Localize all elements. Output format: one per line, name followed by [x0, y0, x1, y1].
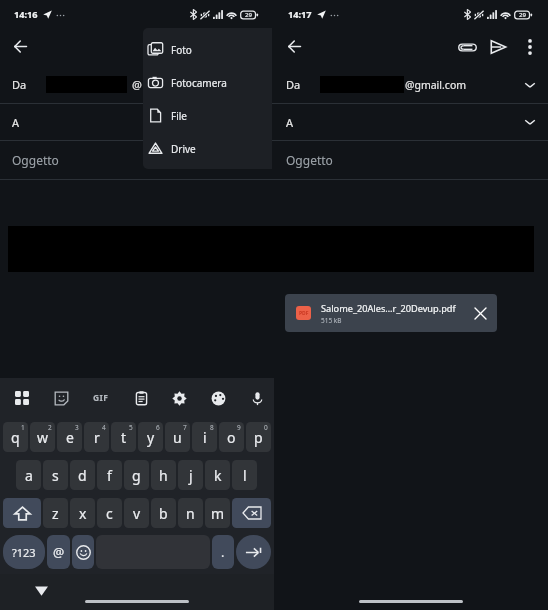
staticText: Oggetto: [286, 152, 333, 168]
staticText: c: [106, 504, 113, 523]
staticText: g: [132, 466, 141, 485]
button[interactable]: b: [151, 498, 176, 528]
staticText: 29: [245, 11, 252, 19]
button[interactable]: Clipboard: [130, 387, 152, 409]
button[interactable]: s: [43, 460, 68, 490]
staticText: Drive: [171, 142, 196, 156]
button[interactable]: o: [219, 422, 244, 452]
button[interactable]: File: [143, 99, 272, 132]
staticText: l: [243, 466, 247, 485]
button[interactable]: Enter: [236, 535, 271, 569]
button[interactable]: .: [212, 535, 234, 569]
staticText: h: [159, 466, 168, 485]
button[interactable]: Settings: [168, 387, 190, 409]
button[interactable]: m: [205, 498, 230, 528]
button[interactable]: r: [84, 422, 109, 452]
other: Shift: [14, 505, 31, 522]
button[interactable]: i: [192, 422, 217, 452]
button[interactable]: f: [97, 460, 122, 490]
button[interactable]: Voice input: [246, 387, 268, 409]
button[interactable]: c: [97, 498, 122, 528]
button[interactable]: Shift: [3, 498, 41, 528]
staticText: @: [132, 77, 142, 92]
button[interactable]: y: [138, 422, 163, 452]
button[interactable]: Attach file: [453, 33, 481, 61]
button[interactable]: a: [16, 460, 41, 490]
staticText: o: [227, 428, 236, 447]
staticText: GIF: [93, 392, 109, 404]
staticText: PDF: [299, 310, 309, 317]
staticText: z: [52, 504, 59, 523]
staticText: 8: [210, 423, 214, 432]
button[interactable]: d: [70, 460, 95, 490]
button[interactable]: Hide keyboard: [35, 586, 48, 596]
button[interactable]: Back: [280, 32, 308, 60]
button[interactable]: Apps: [11, 387, 33, 409]
button[interactable]: q: [3, 422, 28, 452]
other: Backspace: [242, 503, 262, 523]
button[interactable]: p: [246, 422, 271, 452]
staticText: i: [203, 428, 207, 447]
staticText: 4: [102, 423, 106, 432]
staticText: 515 kB: [321, 316, 342, 325]
button[interactable]: n: [178, 498, 203, 528]
staticText: m: [211, 504, 225, 523]
button[interactable]: Emoji: [72, 535, 94, 569]
staticText: File: [171, 109, 187, 123]
staticText: A: [286, 115, 294, 130]
button[interactable]: w: [30, 422, 55, 452]
button[interactable]: Foto: [143, 33, 272, 66]
staticText: 2: [48, 423, 52, 432]
staticText: ?123: [12, 545, 36, 560]
staticText: s: [52, 466, 59, 485]
staticText: .: [221, 544, 225, 561]
button[interactable]: v: [124, 498, 149, 528]
button[interactable]: x: [70, 498, 95, 528]
button[interactable]: h: [151, 460, 176, 490]
button[interactable]: Remove attachment: [469, 302, 491, 324]
button[interactable]: z: [43, 498, 68, 528]
button[interactable]: Backspace: [232, 498, 271, 528]
staticText: Da: [286, 77, 301, 92]
button[interactable]: e: [57, 422, 82, 452]
button[interactable]: l: [232, 460, 257, 490]
staticText: u: [173, 428, 182, 447]
button[interactable]: Theme: [207, 387, 229, 409]
staticText: q: [11, 428, 20, 447]
staticText: 0: [264, 423, 268, 432]
other: Enter: [244, 543, 263, 562]
staticText: 6: [156, 423, 160, 432]
button[interactable]: GIF: [89, 387, 113, 409]
button[interactable]: k: [205, 460, 230, 490]
staticText: t: [121, 428, 127, 447]
button[interactable]: Fotocamera: [143, 66, 272, 99]
staticText: x: [79, 504, 87, 523]
button[interactable]: Drive: [143, 132, 272, 165]
staticText: f: [107, 466, 112, 485]
button[interactable]: j: [178, 460, 203, 490]
staticText: d: [78, 466, 87, 485]
staticText: b: [159, 504, 168, 523]
staticText: k: [214, 466, 222, 485]
button[interactable]: t: [111, 422, 136, 452]
button[interactable]: Stickers: [50, 387, 72, 409]
button[interactable]: ?123: [3, 535, 45, 569]
button[interactable]: More options: [516, 33, 544, 61]
staticText: r: [94, 428, 100, 447]
staticText: 7: [183, 423, 187, 432]
other: Emoji: [76, 545, 91, 560]
staticText: Foto: [171, 43, 192, 57]
staticText: @: [53, 544, 65, 561]
staticText: p: [254, 428, 263, 447]
button[interactable]: u: [165, 422, 190, 452]
button[interactable]: @: [47, 535, 70, 569]
button[interactable]: g: [124, 460, 149, 490]
button[interactable]: Send: [484, 33, 512, 61]
button[interactable]: Back: [6, 32, 34, 60]
staticText: Fotocamera: [171, 76, 227, 90]
button[interactable]: PDF: [285, 294, 497, 332]
staticText: 14:17: [288, 8, 312, 21]
staticText: Oggetto: [12, 152, 59, 168]
staticText: Salome_20Ales…r_20Devup.pdf: [321, 302, 456, 315]
